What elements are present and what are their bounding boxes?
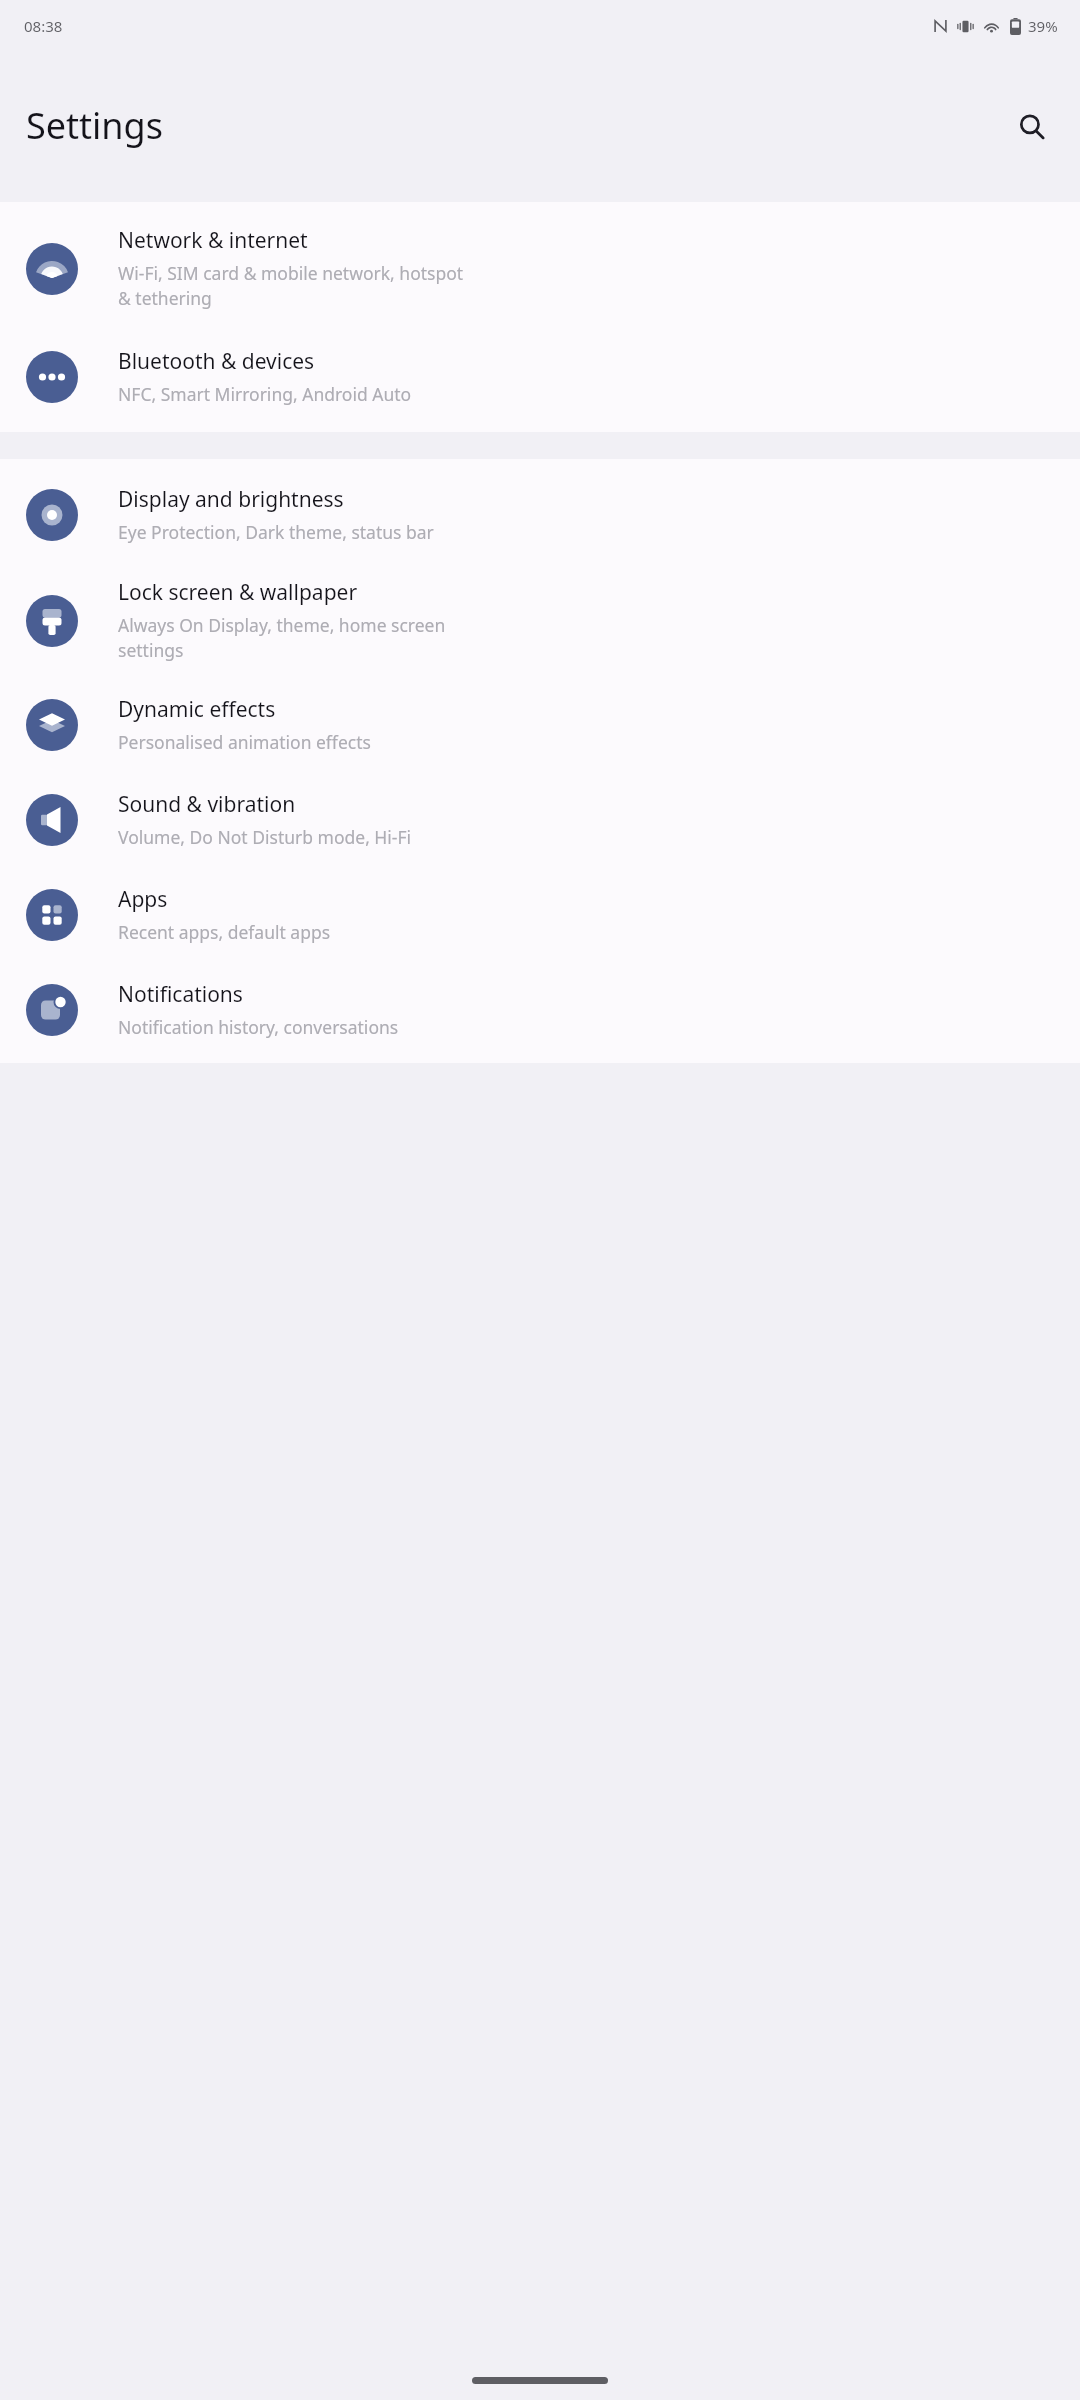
button[interactable]: Network & internet (0, 202, 1080, 329)
staticText: Wi-Fi, SIM card & mobile network, hotspo… (118, 261, 464, 311)
button[interactable]: Notifications (0, 962, 1080, 1063)
button[interactable]: Bluetooth & devices (0, 329, 1080, 432)
staticText: Apps (118, 885, 168, 914)
staticText: 08:38 (24, 16, 63, 36)
staticText: NFC, Smart Mirroring, Android Auto (118, 382, 412, 406)
staticText: Personalised animation effects (118, 730, 371, 754)
staticText: 39% (1028, 16, 1058, 36)
staticText: Volume, Do Not Disturb mode, Hi-Fi (118, 825, 412, 849)
button[interactable]: Lock screen & wallpaper (0, 562, 1080, 679)
staticText: Lock screen & wallpaper (118, 578, 358, 607)
staticText: Settings (26, 101, 163, 150)
staticText: Notifications (118, 980, 243, 1009)
button[interactable]: Apps (0, 867, 1080, 962)
button[interactable]: Sound & vibration (0, 772, 1080, 867)
staticText: Always On Display, theme, home screen se… (118, 613, 446, 663)
staticText: Eye Protection, Dark theme, status bar (118, 520, 434, 544)
staticText: Dynamic effects (118, 695, 276, 724)
staticText: Network & internet (118, 226, 308, 255)
staticText: Notification history, conversations (118, 1015, 399, 1039)
staticText: Bluetooth & devices (118, 347, 315, 376)
staticText: Recent apps, default apps (118, 920, 331, 944)
staticText: Display and brightness (118, 485, 344, 514)
staticText: Sound & vibration (118, 790, 296, 819)
button[interactable]: Search (1004, 99, 1060, 155)
button[interactable]: Display and brightness (0, 459, 1080, 562)
button[interactable]: Dynamic effects (0, 679, 1080, 772)
